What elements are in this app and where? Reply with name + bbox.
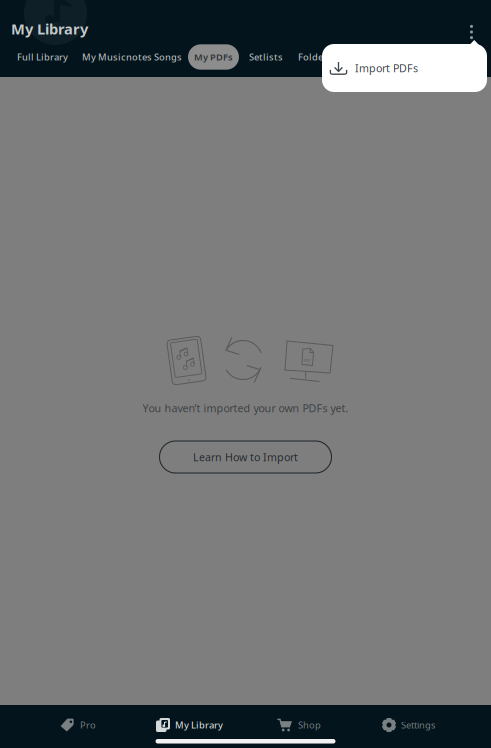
button[interactable]: Settings (378, 712, 439, 738)
staticText: My Musicnotes Songs (82, 51, 182, 63)
staticText: You haven’t imported your own PDFs yet. (142, 401, 348, 415)
staticText: Full Library (17, 51, 68, 63)
staticText: My Library (11, 19, 88, 38)
staticText: Learn How to Import (193, 450, 298, 464)
staticText: Folders (298, 51, 332, 63)
button[interactable]: My Musicnotes Songs (82, 51, 182, 63)
button[interactable]: My PDFs (188, 44, 239, 70)
staticText: Settings (401, 719, 435, 731)
button[interactable]: Import PDFs (322, 44, 487, 92)
staticText: Setlists (249, 51, 283, 63)
button[interactable]: Folders (298, 51, 332, 63)
button[interactable]: Pro (56, 711, 100, 738)
staticText: My Library (175, 719, 223, 731)
staticText: Import PDFs (355, 61, 418, 75)
button[interactable]: Setlists (249, 51, 283, 63)
staticText: PDF (303, 358, 310, 363)
staticText: Shop (298, 719, 321, 731)
button[interactable]: Shop (273, 712, 325, 738)
button[interactable]: My Library (152, 712, 227, 738)
staticText: My PDFs (194, 51, 233, 63)
button[interactable]: More options (459, 16, 484, 48)
staticText: Pro (80, 719, 96, 731)
button[interactable]: Learn How to Import (159, 441, 331, 473)
button[interactable]: Full Library (17, 51, 68, 63)
